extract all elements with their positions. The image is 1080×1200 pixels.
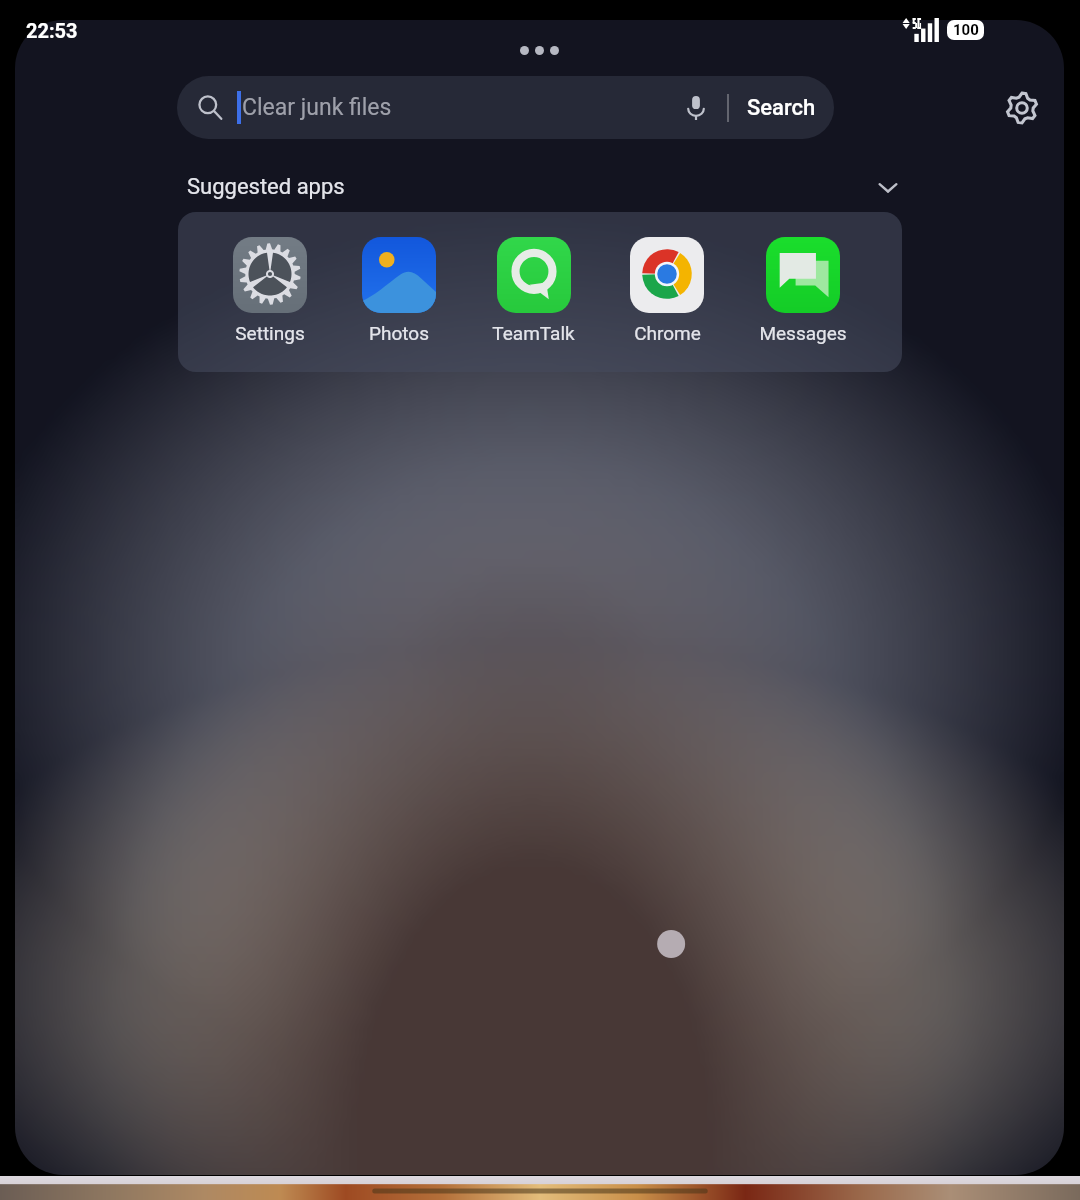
staticText: Settings [235,322,305,344]
staticText: Clear junk files [242,94,392,121]
button[interactable]: Messages [759,237,847,344]
staticText: Chrome [634,322,701,344]
staticText: Search [747,95,816,121]
staticText: 22:53 [26,19,78,42]
staticText: Messages [759,322,847,344]
button[interactable]: Settings [233,237,307,344]
button[interactable]: Settings [998,84,1046,132]
button[interactable]: TeamTalk [492,237,575,344]
button[interactable]: Search [747,95,816,121]
staticText: TeamTalk [492,322,575,344]
staticText: Photos [369,322,429,344]
button[interactable]: Voice search [678,90,714,126]
button[interactable]: Suggested apps [187,173,902,201]
button[interactable]: Chrome [630,237,704,344]
staticText: Suggested apps [187,174,345,200]
staticText: 100 [953,21,979,39]
button[interactable]: Photos [362,237,436,344]
button[interactable]: Clear junk files [177,76,834,139]
